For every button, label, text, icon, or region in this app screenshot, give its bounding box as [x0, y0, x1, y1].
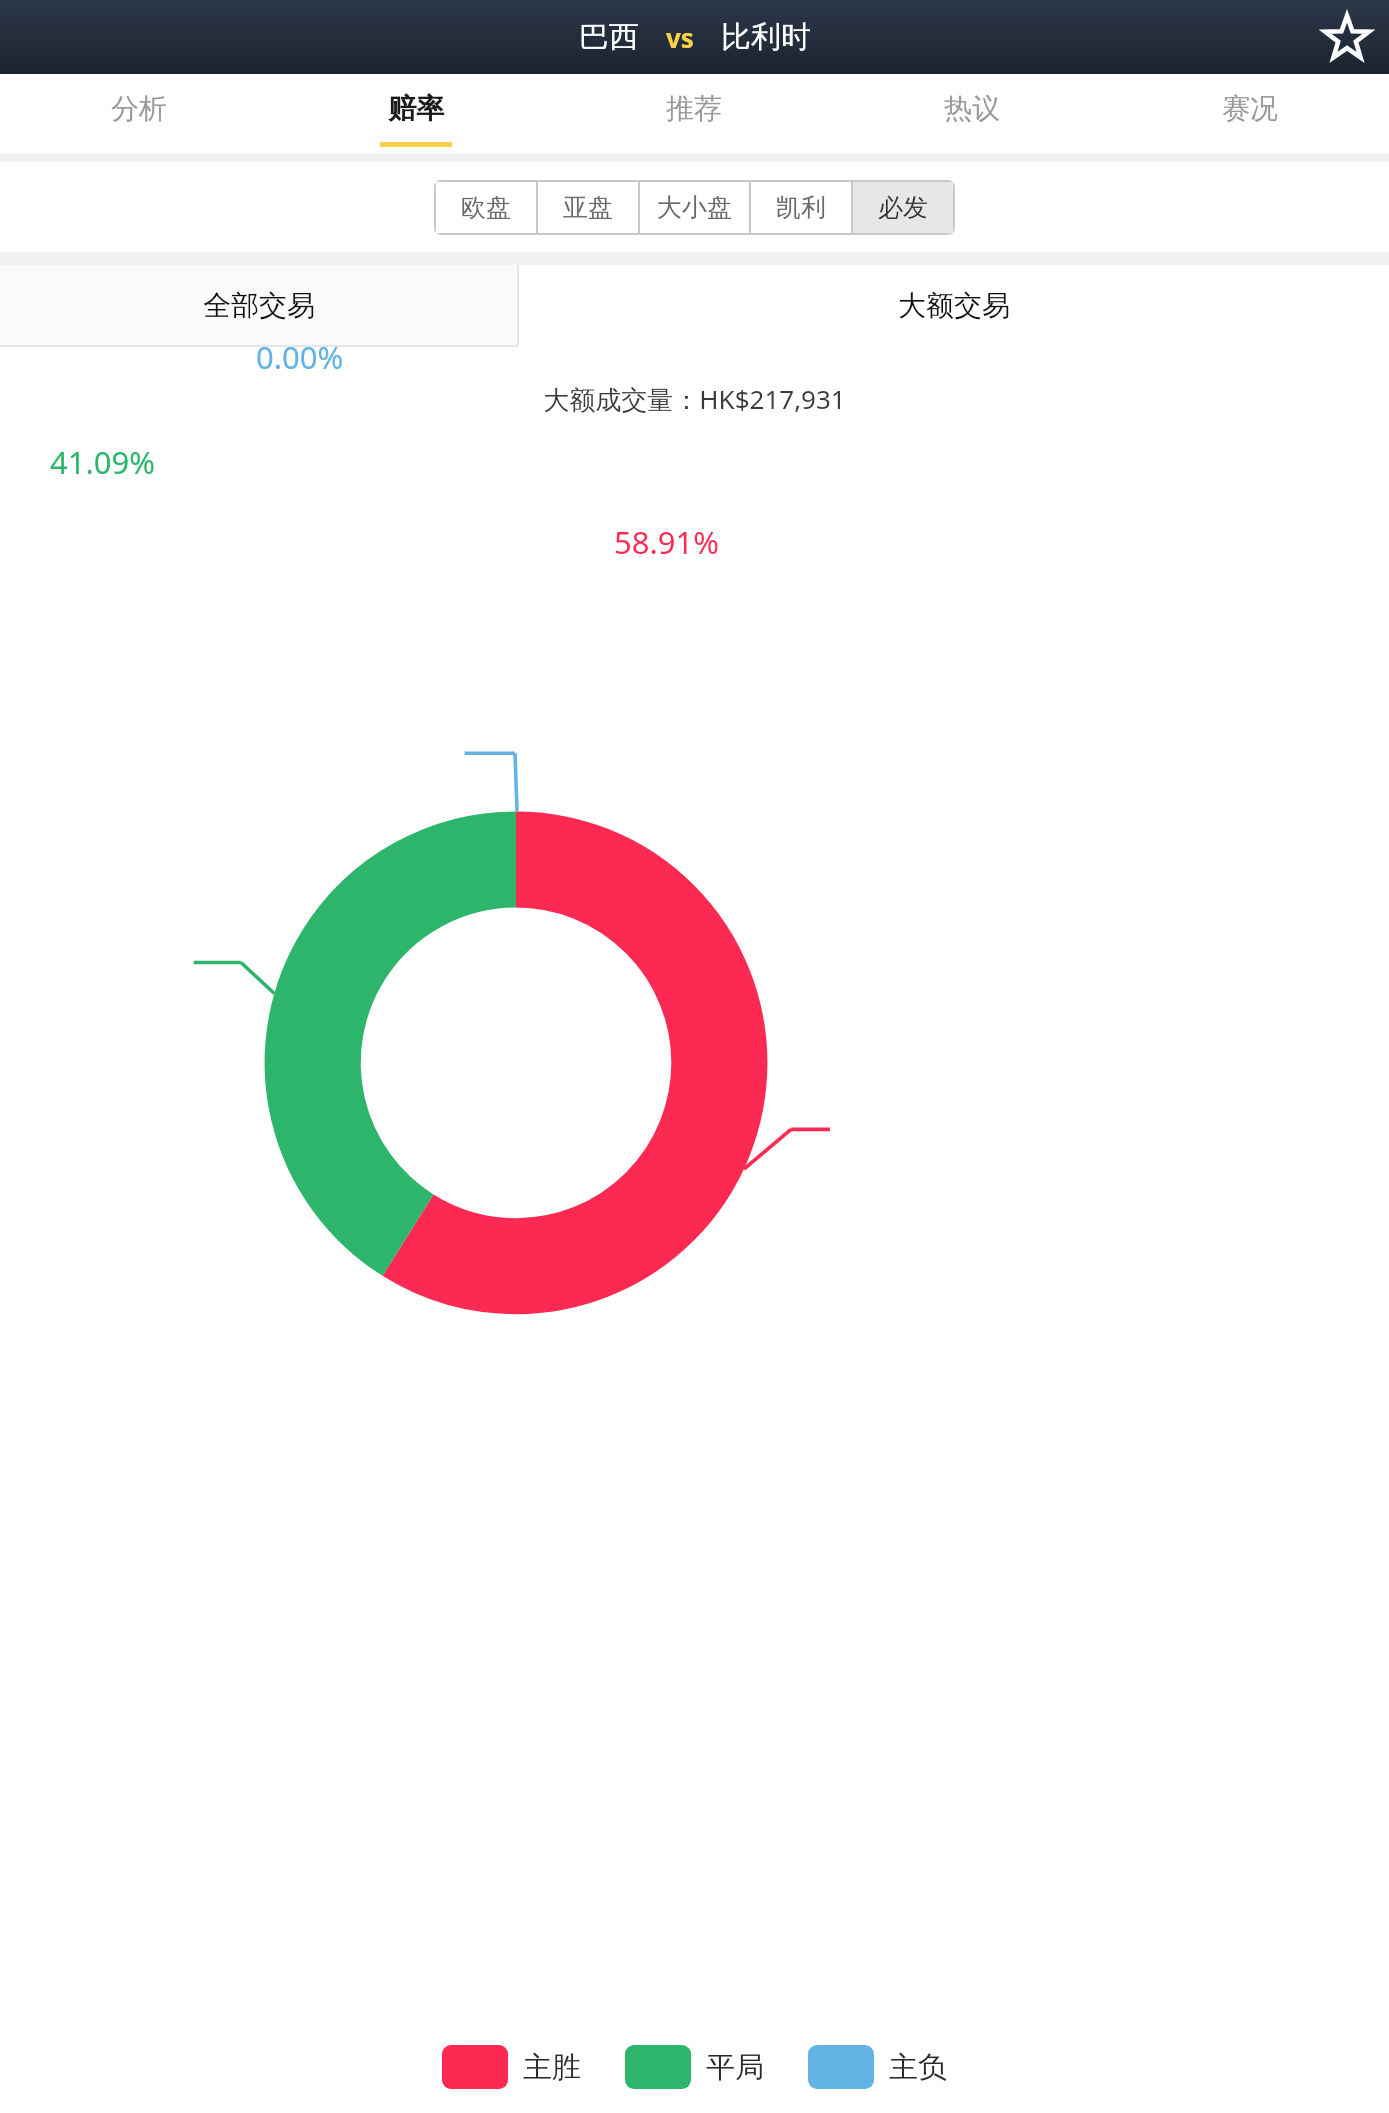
- staticText: 分析: [111, 91, 167, 126]
- staticText: 0.00%: [256, 336, 344, 378]
- staticText: 巴西: [579, 18, 639, 56]
- staticText: 41.09%: [50, 441, 155, 483]
- staticText: 全部交易: [203, 288, 315, 323]
- button[interactable]: 必发: [853, 182, 953, 233]
- staticText: 赛况: [1222, 91, 1278, 126]
- button[interactable]: 平局: [625, 2045, 764, 2089]
- staticText: 推荐: [666, 91, 722, 126]
- button[interactable]: 大小盘: [640, 182, 749, 233]
- button[interactable]: 赔率: [277, 74, 555, 154]
- staticText: 大额交易: [898, 288, 1010, 323]
- button[interactable]: Favorite: [1317, 7, 1377, 67]
- button[interactable]: 分析: [0, 74, 277, 154]
- staticText: 大小盘: [657, 192, 732, 223]
- button[interactable]: 欧盘: [436, 182, 536, 233]
- button[interactable]: 赛况: [1111, 74, 1389, 154]
- button[interactable]: 主负: [808, 2045, 947, 2089]
- staticText: 比利时: [721, 18, 811, 56]
- staticText: vs: [666, 20, 694, 55]
- staticText: 大额成交量：HK$217,931: [0, 381, 1389, 417]
- button[interactable]: 热议: [833, 74, 1111, 154]
- staticText: 主胜: [523, 2049, 581, 2086]
- staticText: 58.91%: [614, 521, 719, 563]
- staticText: 平局: [706, 2049, 764, 2086]
- staticText: 凯利: [776, 192, 826, 223]
- staticText: 亚盘: [563, 192, 613, 223]
- button[interactable]: 亚盘: [538, 182, 638, 233]
- staticText: 赔率: [388, 91, 444, 126]
- button[interactable]: 主胜: [442, 2045, 581, 2089]
- button[interactable]: 推荐: [555, 74, 833, 154]
- staticText: 主负: [889, 2049, 947, 2086]
- button[interactable]: 凯利: [751, 182, 851, 233]
- button[interactable]: 全部交易: [0, 265, 517, 345]
- staticText: 热议: [944, 91, 1000, 126]
- staticText: 必发: [878, 192, 928, 223]
- button[interactable]: 大额交易: [519, 265, 1389, 345]
- staticText: 欧盘: [461, 192, 511, 223]
